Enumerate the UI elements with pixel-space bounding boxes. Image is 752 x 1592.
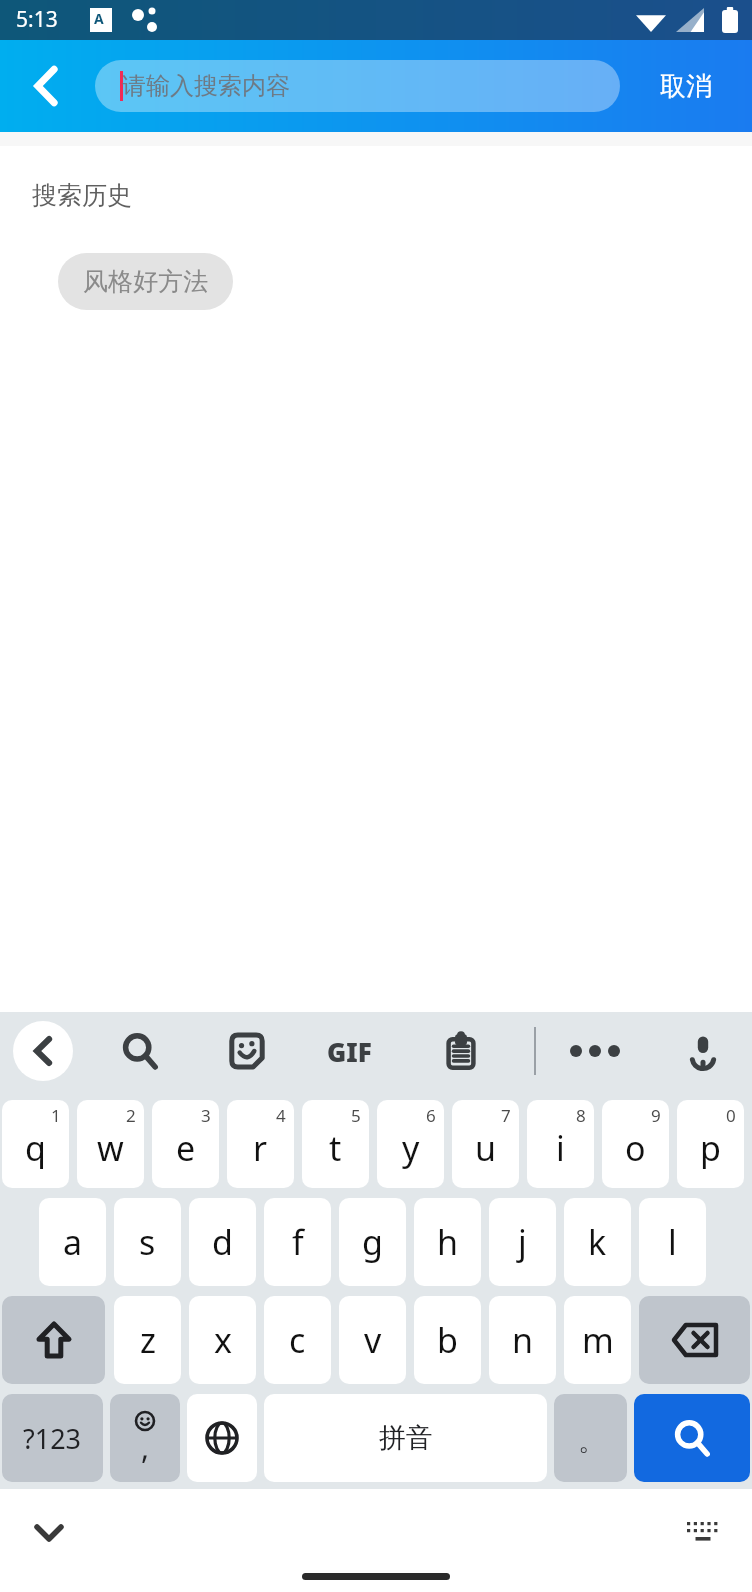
button[interactable]: y bbox=[377, 1100, 444, 1188]
staticText: A bbox=[94, 9, 104, 28]
staticText: e bbox=[176, 1125, 196, 1171]
button[interactable]: a bbox=[39, 1198, 106, 1286]
staticText: n bbox=[512, 1317, 534, 1363]
button[interactable]: More options bbox=[565, 1021, 625, 1081]
staticText: y bbox=[402, 1125, 420, 1171]
staticText: 9 bbox=[651, 1104, 661, 1127]
staticText: 5:13 bbox=[16, 5, 58, 34]
staticText: c bbox=[289, 1317, 306, 1363]
staticText: o bbox=[625, 1125, 646, 1171]
button[interactable]: w bbox=[77, 1100, 144, 1188]
button[interactable]: Search bbox=[110, 1021, 170, 1081]
staticText: x bbox=[214, 1317, 232, 1363]
staticText: 搜索历史 bbox=[32, 180, 132, 211]
staticText: 风格好方法 bbox=[83, 266, 208, 297]
staticText: k bbox=[588, 1219, 607, 1265]
button[interactable]: Back bbox=[0, 40, 92, 132]
staticText: h bbox=[437, 1219, 459, 1265]
staticText: 0 bbox=[726, 1104, 736, 1127]
button[interactable]: v bbox=[339, 1296, 406, 1384]
button[interactable]: 拼音 bbox=[264, 1394, 547, 1482]
staticText: g bbox=[362, 1219, 383, 1265]
staticText: l bbox=[668, 1219, 677, 1265]
staticText: v bbox=[364, 1317, 382, 1363]
button[interactable]: Emoji and comma bbox=[110, 1394, 180, 1482]
staticText: j bbox=[518, 1219, 527, 1265]
staticText: 7 bbox=[501, 1104, 511, 1127]
staticText: w bbox=[97, 1125, 124, 1171]
staticText: t bbox=[329, 1125, 342, 1171]
staticText: ?123 bbox=[23, 1420, 82, 1457]
staticText: a bbox=[63, 1219, 83, 1265]
button[interactable]: 请输入搜索内容 bbox=[95, 60, 620, 112]
staticText: 取消 bbox=[660, 70, 712, 103]
staticText: p bbox=[700, 1125, 721, 1171]
button[interactable]: 取消 bbox=[620, 40, 752, 132]
staticText: 6 bbox=[426, 1104, 436, 1127]
button[interactable]: r bbox=[227, 1100, 294, 1188]
staticText: 3 bbox=[201, 1104, 211, 1127]
staticText: b bbox=[437, 1317, 458, 1363]
staticText: d bbox=[212, 1219, 233, 1265]
staticText: 。 bbox=[578, 1425, 604, 1458]
staticText: 拼音 bbox=[379, 1421, 433, 1455]
staticText: s bbox=[139, 1219, 156, 1265]
staticText: 请输入搜索内容 bbox=[122, 71, 290, 101]
button[interactable]: 风格好方法 bbox=[58, 253, 233, 310]
button[interactable]: q bbox=[2, 1100, 69, 1188]
staticText: u bbox=[475, 1125, 497, 1171]
button[interactable]: e bbox=[152, 1100, 219, 1188]
staticText: 4 bbox=[276, 1104, 286, 1127]
button[interactable]: t bbox=[302, 1100, 369, 1188]
button[interactable]: b bbox=[414, 1296, 481, 1384]
button[interactable]: ?123 bbox=[2, 1394, 103, 1482]
button[interactable]: p bbox=[677, 1100, 744, 1188]
staticText: f bbox=[292, 1219, 304, 1265]
button[interactable]: g bbox=[339, 1198, 406, 1286]
button[interactable]: n bbox=[489, 1296, 556, 1384]
button[interactable]: l bbox=[639, 1198, 706, 1286]
button[interactable]: GIF bbox=[322, 1021, 382, 1081]
button[interactable]: Stickers bbox=[217, 1021, 277, 1081]
staticText: , bbox=[141, 1427, 150, 1468]
button[interactable]: k bbox=[564, 1198, 631, 1286]
button[interactable]: o bbox=[602, 1100, 669, 1188]
staticText: i bbox=[556, 1125, 565, 1171]
staticText: z bbox=[140, 1317, 156, 1363]
staticText: 5 bbox=[351, 1104, 361, 1127]
button[interactable]: u bbox=[452, 1100, 519, 1188]
button[interactable]: j bbox=[489, 1198, 556, 1286]
button[interactable]: d bbox=[189, 1198, 256, 1286]
button[interactable]: Backspace bbox=[639, 1296, 750, 1384]
staticText: r bbox=[253, 1125, 268, 1171]
button[interactable]: x bbox=[189, 1296, 256, 1384]
button[interactable]: i bbox=[527, 1100, 594, 1188]
button[interactable]: Switch keyboard bbox=[672, 1502, 734, 1564]
button[interactable]: Voice input bbox=[673, 1021, 733, 1081]
button[interactable]: Clipboard bbox=[431, 1021, 491, 1081]
staticText: 2 bbox=[126, 1104, 136, 1127]
button[interactable]: z bbox=[114, 1296, 181, 1384]
staticText: GIF bbox=[327, 1034, 372, 1069]
staticText: q bbox=[25, 1125, 46, 1171]
staticText: 8 bbox=[576, 1104, 586, 1127]
button[interactable]: f bbox=[264, 1198, 331, 1286]
staticText: 1 bbox=[51, 1104, 61, 1127]
button[interactable]: s bbox=[114, 1198, 181, 1286]
button[interactable]: c bbox=[264, 1296, 331, 1384]
button[interactable]: Shift bbox=[2, 1296, 105, 1384]
button[interactable]: Change language bbox=[187, 1394, 257, 1482]
button[interactable]: Close keyboard panel bbox=[13, 1021, 73, 1081]
button[interactable]: Search bbox=[634, 1394, 750, 1482]
staticText: m bbox=[582, 1317, 614, 1363]
button[interactable]: m bbox=[564, 1296, 631, 1384]
button[interactable]: Hide keyboard bbox=[18, 1502, 80, 1564]
button[interactable]: 。 bbox=[554, 1394, 627, 1482]
button[interactable]: h bbox=[414, 1198, 481, 1286]
